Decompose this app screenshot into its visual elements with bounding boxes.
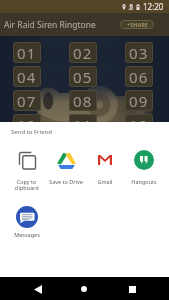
staticText: 11	[73, 115, 93, 135]
button[interactable]: 09	[125, 90, 153, 111]
staticText: 03	[129, 43, 149, 63]
button[interactable]: 07	[13, 90, 41, 111]
button[interactable]: Recent apps	[121, 278, 143, 300]
button[interactable]: 01	[13, 42, 41, 63]
staticText: 06	[129, 67, 149, 87]
button[interactable]: 12	[125, 114, 153, 135]
button[interactable]: 11	[69, 114, 97, 135]
button[interactable]: 03	[125, 42, 153, 63]
staticText: Send to Friend	[11, 128, 52, 136]
staticText: +SHARE	[127, 21, 148, 28]
staticText: 09	[129, 91, 149, 111]
button[interactable]: 08	[69, 90, 97, 111]
button[interactable]: Back	[27, 278, 49, 300]
button[interactable]: Gmail	[85, 149, 124, 185]
button[interactable]: 10	[13, 114, 41, 135]
button[interactable]: 04	[13, 66, 41, 87]
staticText: 12:20	[143, 1, 164, 12]
staticText: Copy to clipboard	[14, 178, 39, 192]
button[interactable]: 02	[69, 42, 97, 63]
button[interactable]: Save to Drive	[46, 149, 85, 185]
button[interactable]: Hangouts	[124, 149, 163, 185]
button[interactable]: Copy to clipboard	[7, 149, 46, 192]
button[interactable]: Messages	[7, 206, 46, 238]
staticText: Save to Drive	[49, 178, 83, 185]
button[interactable]: Home	[73, 278, 95, 300]
staticText: 12	[129, 115, 149, 135]
button[interactable]: 05	[69, 66, 97, 87]
button[interactable]: +SHARE	[120, 20, 154, 29]
staticText: Messages	[14, 231, 40, 238]
staticText: 05	[73, 67, 93, 87]
staticText: 07	[17, 91, 37, 111]
staticText: 10	[17, 115, 37, 135]
staticText: Hangouts	[131, 178, 157, 185]
button[interactable]: 06	[125, 66, 153, 87]
staticText: Air Raid Siren Ringtone	[4, 19, 96, 31]
staticText: Gmail	[97, 178, 113, 185]
staticText: 08	[73, 91, 93, 111]
staticText: 04	[17, 67, 37, 87]
staticText: 01	[17, 43, 37, 63]
staticText: 02	[73, 43, 93, 63]
